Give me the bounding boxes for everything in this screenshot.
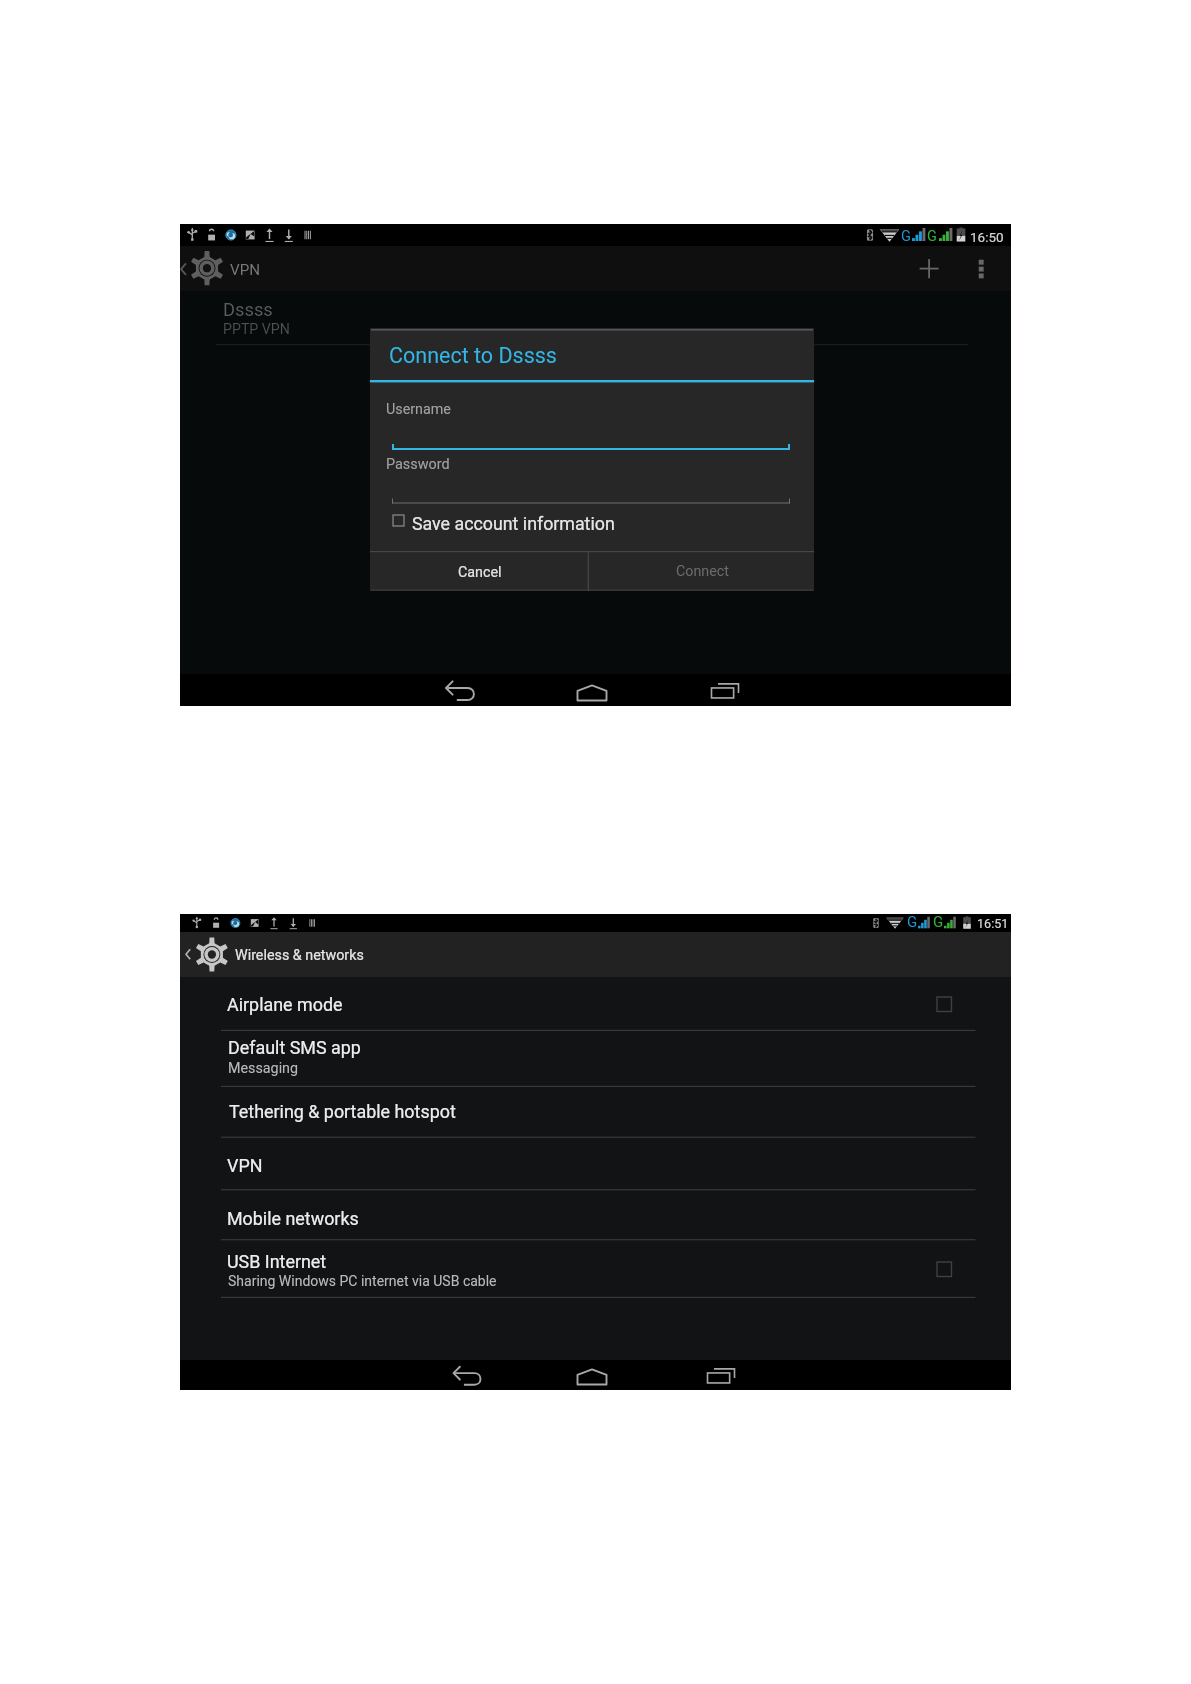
staticText: Dssss (223, 299, 273, 320)
button[interactable]: Home (562, 1360, 622, 1390)
staticText: Default SMS app (228, 1037, 361, 1058)
staticText: G (907, 913, 918, 931)
button[interactable]: Home (562, 674, 622, 706)
staticText: Tethering & portable hotspot (229, 1101, 456, 1122)
button[interactable] (180, 1029, 1011, 1085)
button[interactable]: Recent apps (695, 674, 755, 706)
button[interactable] (180, 1085, 1011, 1136)
staticText: 16:50 (970, 229, 1004, 245)
staticText: Password (386, 456, 450, 473)
staticText: Username (386, 401, 451, 418)
staticText: 16:51 (977, 916, 1009, 931)
staticText: PPTP VPN (223, 321, 290, 338)
staticText: Cancel (458, 564, 502, 581)
button[interactable] (180, 1241, 1011, 1296)
staticText: VPN (230, 261, 261, 279)
button[interactable]: Recent apps (695, 1360, 755, 1390)
staticText: Wireless & networks (235, 947, 364, 964)
button[interactable] (180, 291, 1011, 345)
staticText: G (933, 913, 944, 931)
button[interactable] (370, 550, 588, 591)
button[interactable] (180, 977, 1011, 1029)
button[interactable]: Add VPN profile (905, 250, 949, 290)
button[interactable] (180, 1136, 1011, 1189)
staticText: Airplane mode (227, 994, 343, 1015)
button[interactable]: More options (963, 250, 999, 290)
staticText: Sharing Windows PC internet via USB cabl… (228, 1273, 497, 1289)
button[interactable] (590, 550, 814, 591)
staticText: USB Internet (227, 1251, 327, 1272)
button[interactable]: Navigate up (180, 932, 240, 977)
staticText: Messaging (228, 1060, 299, 1077)
staticText: Connect to Dssss (389, 343, 557, 368)
staticText: VPN (227, 1155, 263, 1176)
staticText: Connect (676, 563, 729, 580)
button[interactable] (180, 1189, 1011, 1241)
staticText: Save account information (412, 513, 615, 534)
staticText: Mobile networks (227, 1208, 359, 1229)
staticText: G (901, 228, 911, 245)
staticText: G (927, 228, 937, 245)
